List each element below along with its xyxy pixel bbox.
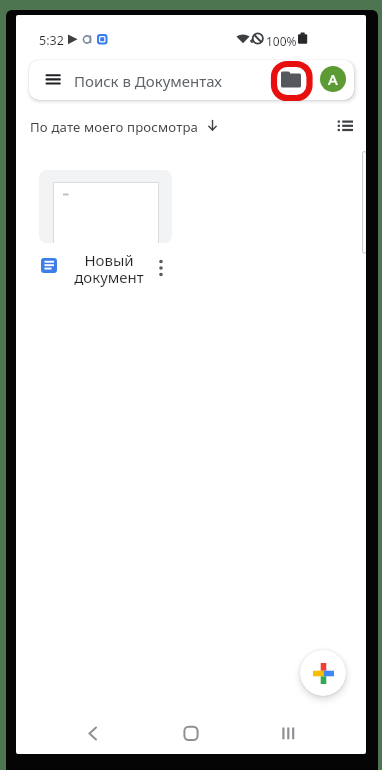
staticText: A bbox=[328, 69, 338, 89]
button[interactable]: Новый документ bbox=[32, 249, 188, 295]
button[interactable] bbox=[167, 712, 215, 754]
staticText: 100% bbox=[266, 33, 297, 49]
button[interactable] bbox=[69, 712, 117, 754]
button[interactable] bbox=[263, 712, 311, 754]
staticText: По дате моего просмотра bbox=[30, 118, 199, 136]
button[interactable]: A bbox=[320, 66, 346, 92]
button[interactable] bbox=[332, 114, 358, 138]
staticText: Новый документ bbox=[68, 250, 150, 290]
staticText: 5:32 bbox=[39, 32, 64, 49]
button[interactable] bbox=[300, 650, 346, 696]
button[interactable] bbox=[39, 170, 172, 243]
button[interactable]: Поиск в Документах bbox=[29, 60, 354, 100]
staticText: Поиск в Документах bbox=[74, 71, 222, 91]
button[interactable]: По дате моего просмотра bbox=[30, 115, 230, 137]
